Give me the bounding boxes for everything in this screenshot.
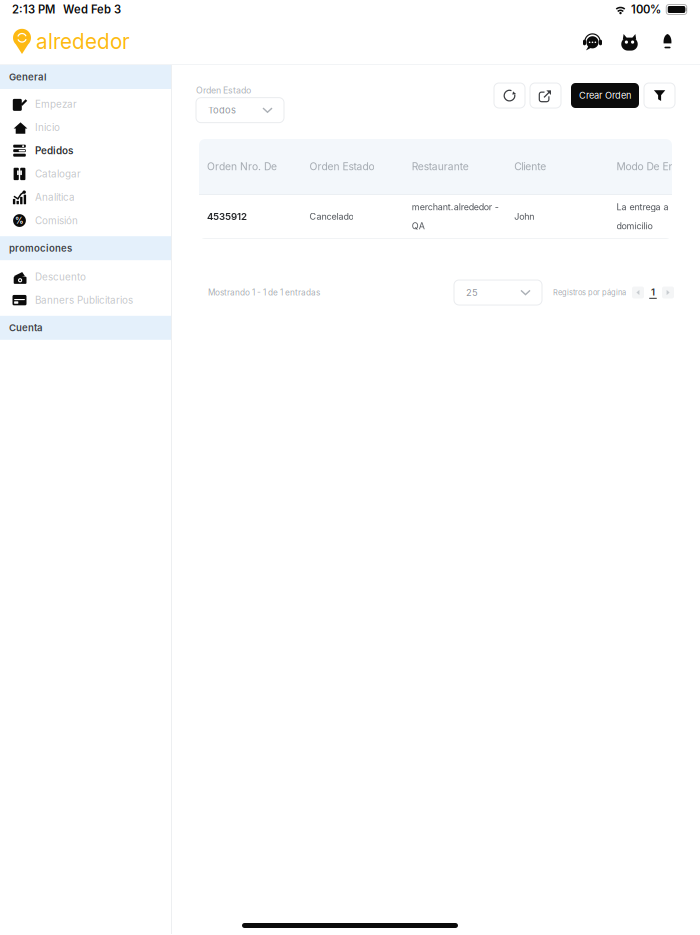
staticText: Cuenta — [9, 322, 43, 334]
staticText: Analítica — [35, 191, 75, 203]
staticText: % — [15, 215, 24, 226]
button[interactable]: 1 — [645, 284, 661, 300]
button[interactable]: Refresh — [494, 83, 525, 108]
staticText: merchant.alrededor - — [412, 202, 499, 212]
button[interactable]: Inicio — [0, 116, 171, 139]
button[interactable]: Todos — [196, 98, 284, 123]
staticText: Orden Estado — [196, 85, 251, 96]
staticText: promociones — [9, 242, 72, 254]
staticText: Mostrando 1 - 1 de 1 entradas — [208, 287, 320, 297]
button[interactable]: Empezar — [0, 92, 171, 116]
button[interactable]: Support chat — [582, 31, 603, 52]
staticText: Modo De Entrega — [617, 160, 700, 173]
staticText: Cliente — [514, 160, 546, 173]
staticText: 25 — [466, 287, 478, 298]
staticText: General — [9, 71, 47, 83]
staticText: Wed Feb 3 — [63, 3, 121, 16]
staticText: Banners Publicitarios — [35, 294, 133, 306]
staticText: Cancelado — [309, 211, 353, 222]
staticText: Crear Orden — [579, 90, 631, 101]
staticText: Restaurante — [412, 160, 469, 173]
button[interactable]: Crear Orden — [571, 83, 639, 108]
staticText: QA — [412, 220, 425, 231]
staticText: 1 — [651, 286, 655, 298]
staticText: 4535912 — [207, 211, 247, 222]
staticText: Todos — [208, 104, 236, 116]
button[interactable]: Analítica — [0, 186, 171, 209]
staticText: 2:13 PM — [12, 3, 55, 16]
staticText: La entrega a — [617, 202, 669, 212]
button[interactable]: Banners Publicitarios — [0, 288, 171, 312]
button[interactable]: Descuento — [0, 265, 171, 288]
staticText: Catalogar — [35, 168, 81, 180]
staticText: alrededor — [36, 29, 130, 54]
button[interactable]: Export — [530, 83, 561, 108]
button[interactable]: % — [0, 209, 171, 232]
button[interactable]: Next page — [661, 284, 675, 300]
staticText: Empezar — [35, 98, 77, 110]
staticText: 100% — [631, 3, 661, 16]
staticText: Registros por página — [553, 288, 626, 297]
button[interactable]: Filter — [644, 83, 675, 108]
button[interactable]: Pedidos — [0, 139, 171, 162]
staticText: Comisión — [35, 215, 78, 226]
staticText: Descuento — [35, 271, 86, 283]
staticText: John — [514, 211, 534, 222]
button[interactable]: 25 — [454, 280, 542, 305]
button[interactable]: Previous page — [631, 284, 645, 300]
staticText: Inicio — [35, 121, 60, 133]
staticText: Orden Estado — [309, 160, 374, 173]
staticText: Orden Nro. De — [207, 160, 277, 173]
button[interactable]: Account — [657, 31, 678, 52]
staticText: domicilio — [617, 220, 653, 231]
button[interactable]: Catalogar — [0, 162, 171, 186]
button[interactable]: Assistant — [619, 31, 640, 52]
staticText: Pedidos — [35, 145, 73, 157]
